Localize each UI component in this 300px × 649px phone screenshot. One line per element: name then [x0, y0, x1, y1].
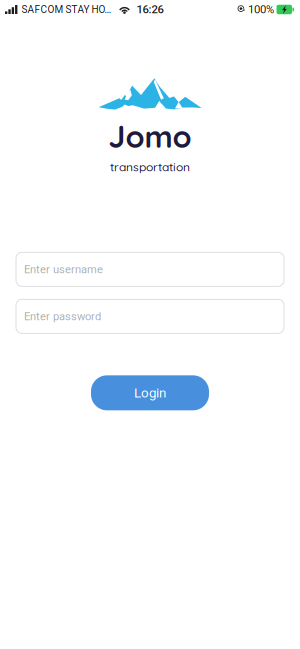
- button[interactable]: Login: [91, 375, 209, 410]
- staticText: Jomo: [108, 117, 191, 155]
- staticText: transportation: [110, 159, 190, 174]
- staticText: Enter password: [24, 310, 101, 323]
- staticText: Login: [134, 385, 166, 401]
- staticText: SAFCOM STAY HO…: [21, 4, 111, 15]
- staticText: 16:26: [136, 3, 163, 16]
- staticText: 100%: [248, 3, 274, 16]
- staticText: Enter username: [24, 263, 103, 276]
